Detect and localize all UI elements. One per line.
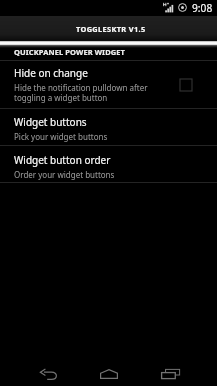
staticText: Hide on change — [14, 66, 88, 80]
staticText: TOGGLESKTR V1.5 — [76, 24, 146, 34]
staticText: QUICKPANEL POWER WIDGET — [14, 47, 125, 57]
staticText: Order your widget buttons — [14, 169, 115, 180]
staticText: 9:08 — [192, 1, 213, 15]
staticText: Hide the notification pulldown after tog… — [14, 82, 148, 103]
button[interactable]: Hide on change — [0, 61, 217, 108]
button[interactable]: Home — [89, 349, 129, 386]
button[interactable]: Widget buttons — [0, 109, 217, 145]
staticText: Pick your widget buttons — [14, 131, 108, 142]
button[interactable]: Recent apps — [150, 349, 190, 386]
staticText: Widget button order — [14, 153, 111, 167]
button[interactable]: Back — [28, 349, 68, 386]
button[interactable]: Hide on change checkbox — [174, 73, 198, 97]
staticText: Widget buttons — [14, 115, 87, 129]
button[interactable]: Widget button order — [0, 146, 217, 182]
